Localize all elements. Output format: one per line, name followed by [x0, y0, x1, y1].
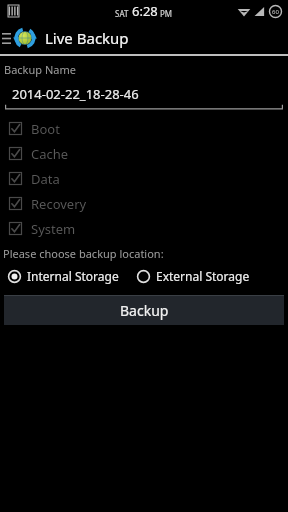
button[interactable]: System: [0, 216, 288, 241]
button[interactable]: Boot: [0, 116, 288, 141]
button[interactable]: Internal Storage: [0, 265, 119, 287]
staticText: Internal Storage: [27, 268, 119, 284]
staticText: Data: [31, 170, 60, 188]
staticText: SAT: [115, 8, 129, 19]
button[interactable]: External Storage: [129, 265, 250, 287]
staticText: System: [31, 220, 76, 238]
button[interactable]: Cache: [0, 141, 288, 166]
staticText: Cache: [31, 145, 69, 163]
staticText: Boot: [31, 120, 60, 138]
staticText: 2014-02-22_18-28-46: [12, 85, 139, 103]
staticText: Live Backup: [45, 28, 129, 48]
button[interactable]: Backup: [4, 295, 284, 325]
staticText: 60: [272, 8, 279, 16]
button[interactable]: 2014-02-22_18-28-46: [5, 82, 283, 110]
button[interactable]: Data: [0, 166, 288, 191]
staticText: External Storage: [156, 268, 250, 284]
staticText: Recovery: [31, 195, 87, 213]
button[interactable]: Open navigation drawer: [0, 22, 12, 54]
staticText: 6:28: [132, 2, 158, 20]
staticText: Backup Name: [4, 62, 76, 77]
button[interactable]: Recovery: [0, 191, 288, 216]
button[interactable]: Live Backup app icon: [14, 27, 36, 49]
staticText: Backup: [120, 301, 169, 320]
staticText: PM: [160, 8, 173, 19]
staticText: Please choose backup location:: [3, 246, 164, 261]
